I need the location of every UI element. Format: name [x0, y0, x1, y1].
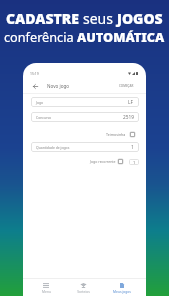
staticText: COMEÇAR	[119, 84, 134, 88]
button[interactable]: Checkbox	[118, 159, 123, 164]
button[interactable]: Back	[30, 81, 40, 91]
button[interactable]: Menu	[28, 279, 64, 296]
button[interactable]: Jogo	[31, 97, 139, 107]
button[interactable]: Concurso	[31, 112, 139, 122]
staticText: CADASTRE	[6, 9, 83, 28]
button[interactable]: Meus jogos	[104, 279, 140, 296]
staticText: seus	[83, 9, 117, 28]
staticText: Jogo recorrente	[90, 159, 116, 164]
button[interactable]: Sorteios	[65, 279, 101, 296]
staticText: 15:19	[30, 71, 39, 76]
staticText: Teimosinha	[106, 132, 126, 137]
staticText: Concurso	[36, 115, 52, 120]
staticText: 2519	[123, 114, 134, 121]
staticText: Quantidade de jogos	[36, 145, 70, 150]
staticText: Jogo	[36, 100, 44, 105]
staticText: JOGOS	[117, 9, 163, 28]
staticText: Sorteios	[77, 289, 90, 293]
staticText: AUTOMÁTICA	[77, 28, 165, 45]
staticText: 1	[133, 160, 136, 165]
button[interactable]: 1	[129, 159, 139, 165]
button[interactable]: Jogo recorrente	[90, 159, 123, 164]
staticText: LF	[128, 99, 134, 106]
button[interactable]: Checkbox	[130, 132, 135, 137]
staticText: Meus jogos	[113, 289, 131, 293]
staticText: Novo jogo	[47, 83, 70, 89]
button[interactable]: COMEÇAR	[113, 80, 146, 92]
staticText: conferência	[4, 28, 77, 45]
staticText: 1	[131, 144, 134, 151]
staticText: Menu	[42, 289, 51, 293]
button[interactable]: Teimosinha	[106, 130, 135, 138]
button[interactable]: Quantidade de jogos	[31, 142, 139, 152]
